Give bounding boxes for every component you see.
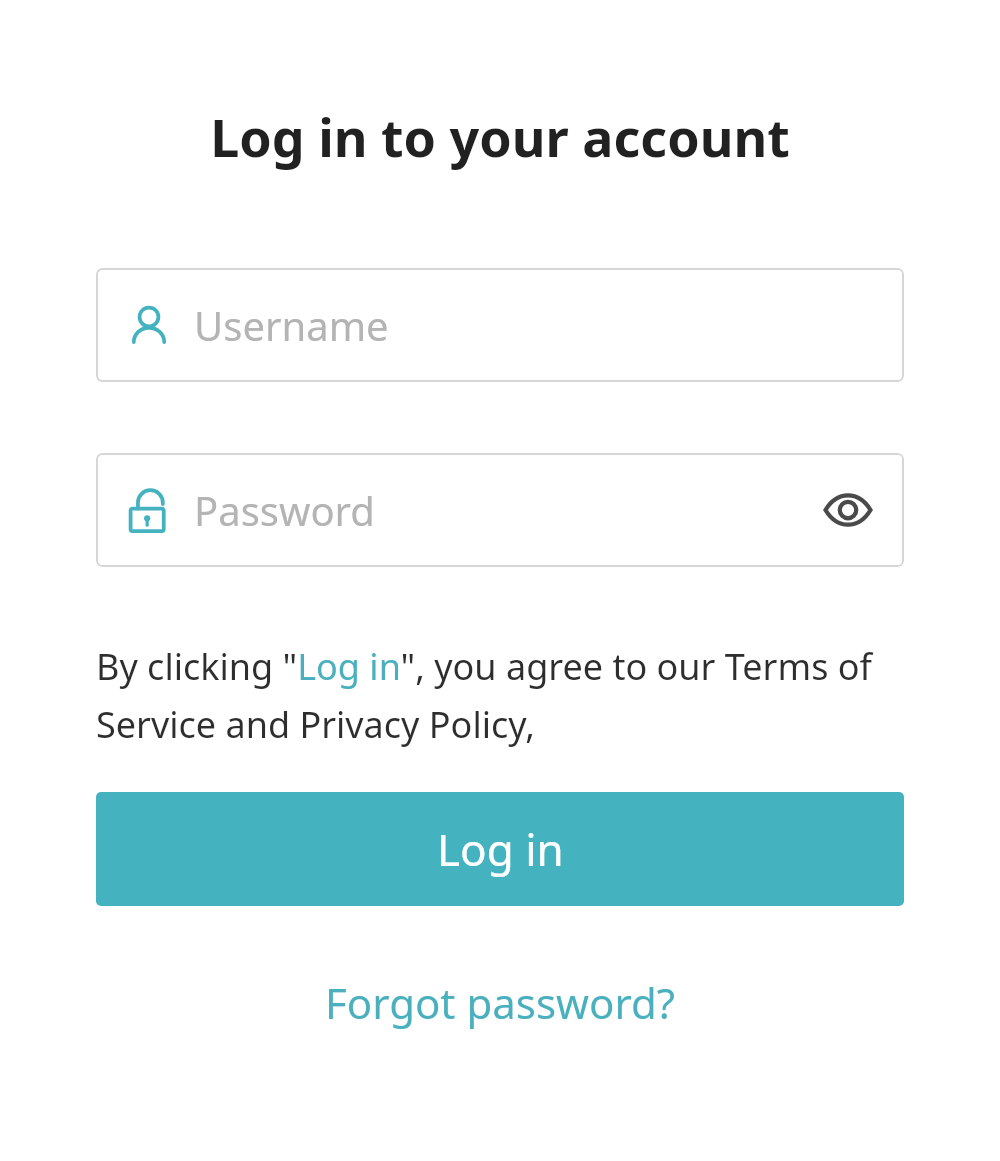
staticText: Username [194, 298, 876, 352]
staticText: Forgot password? [325, 974, 676, 1031]
button[interactable]: Forgot password? [313, 966, 688, 1039]
button[interactable]: Password [96, 453, 904, 567]
staticText: Log in [437, 819, 564, 879]
staticText: By clicking "Log in", you agree to our T… [96, 642, 904, 748]
button[interactable]: Log in [96, 792, 904, 906]
staticText: Password [194, 483, 820, 537]
staticText: Log in to your account [210, 101, 790, 172]
button[interactable]: Username [96, 268, 904, 382]
button[interactable]: Show password [820, 482, 876, 538]
